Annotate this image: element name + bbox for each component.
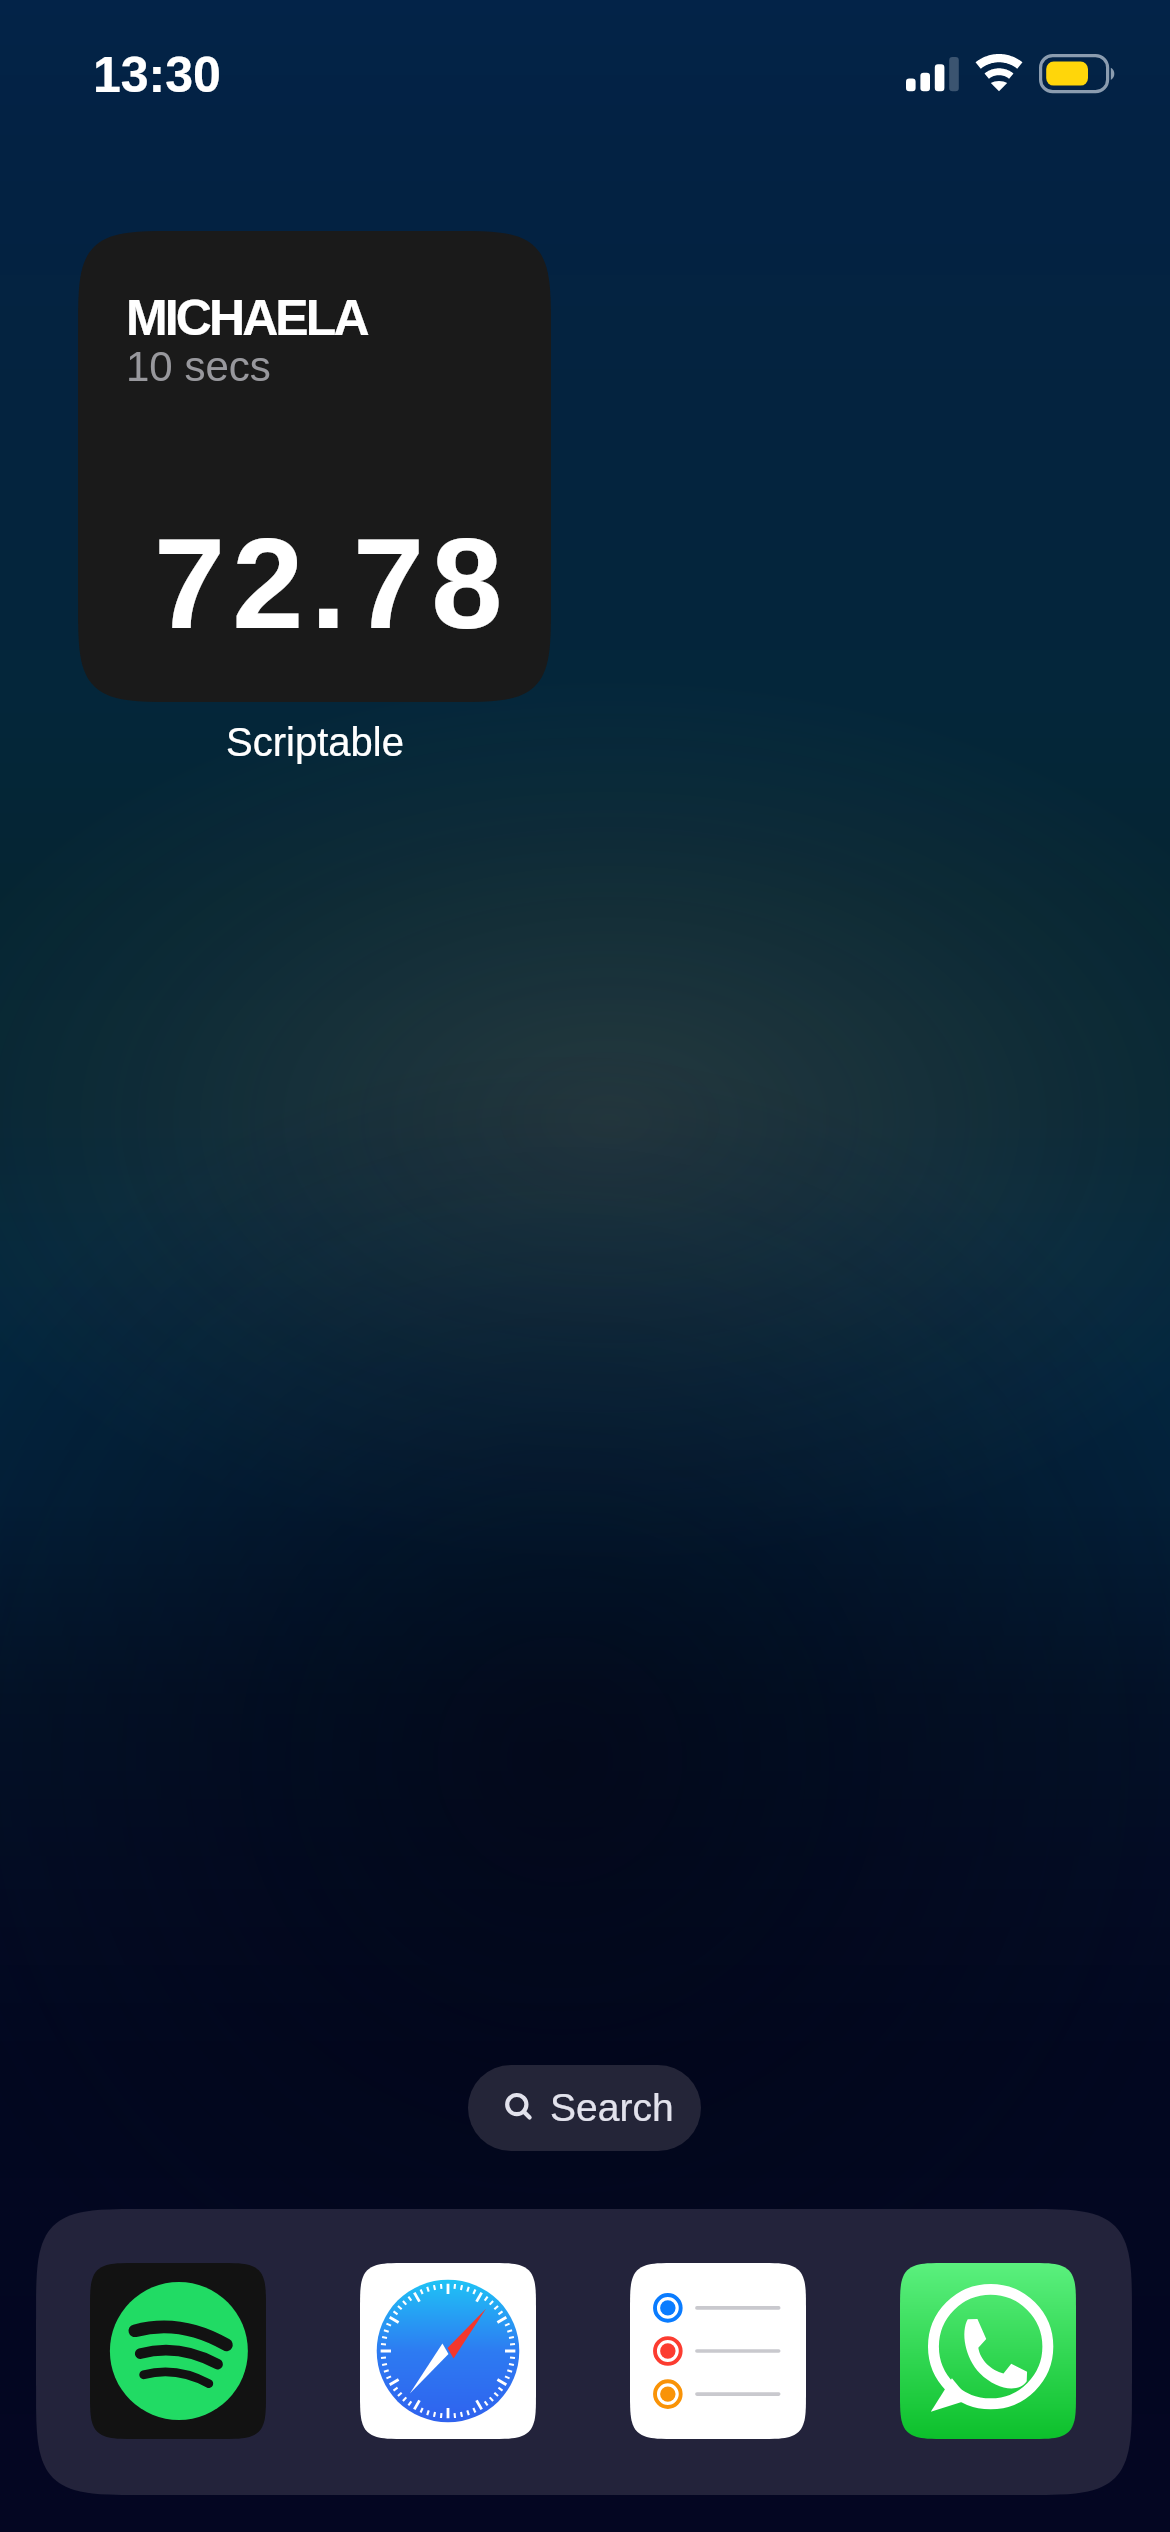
staticText: Scriptable — [226, 720, 404, 765]
button[interactable]: WhatsApp — [900, 2263, 1076, 2439]
button[interactable]: MICHAELA — [78, 231, 551, 702]
staticText: MICHAELA — [126, 290, 367, 346]
button[interactable]: Search — [468, 2065, 701, 2151]
staticText: 72.78 — [154, 512, 510, 655]
staticText: Search — [550, 2086, 674, 2130]
staticText: 13:30 — [93, 47, 221, 103]
button[interactable]: Safari — [360, 2263, 536, 2439]
button[interactable]: Spotify — [90, 2263, 266, 2439]
staticText: 10 secs — [126, 343, 271, 390]
button[interactable]: Reminders — [630, 2263, 806, 2439]
